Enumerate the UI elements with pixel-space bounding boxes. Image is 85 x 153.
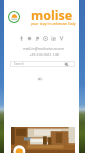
staticText: mail-in@molisetour.com — [23, 46, 64, 51]
staticText: Search — [14, 62, 24, 66]
staticText: +39.336.5661.148 — [29, 52, 59, 57]
button[interactable]: Molise home — [8, 11, 20, 23]
button[interactable]: Pinterest — [33, 34, 41, 43]
button[interactable]: Email — [41, 34, 49, 43]
staticText: molise — [31, 7, 73, 24]
button[interactable]: Facebook — [17, 34, 25, 43]
button[interactable]: Search — [10, 61, 75, 67]
button[interactable]: Featured accommodation photo — [11, 127, 75, 153]
button[interactable]: Vimeo — [57, 34, 65, 43]
button[interactable]: Twitter — [25, 34, 33, 43]
staticText: your stay in unknown Italy — [31, 21, 76, 26]
button[interactable]: LinkedIn — [49, 34, 57, 43]
